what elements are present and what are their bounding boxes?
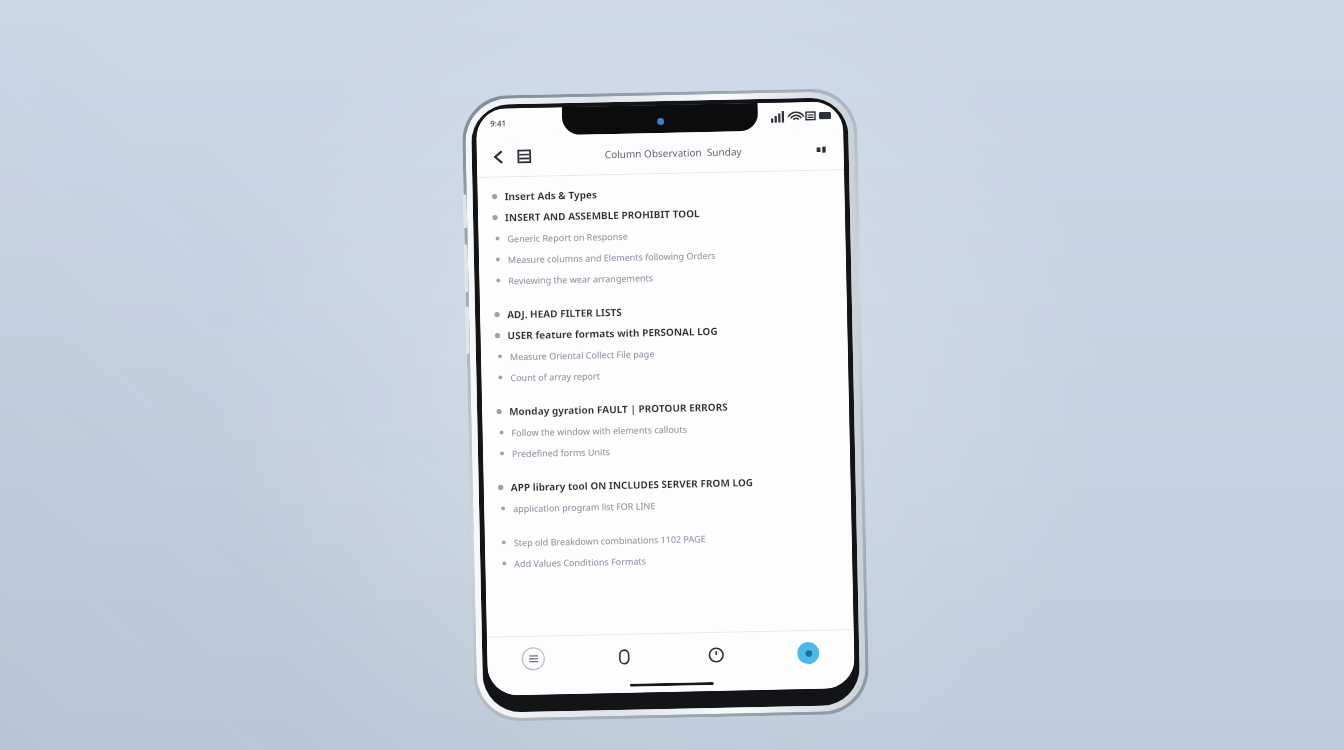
button[interactable]: Predefined forms Units [493, 435, 838, 464]
staticText: Measure Oriental Collect File page [510, 347, 655, 362]
button[interactable]: application program list FOR LINE [494, 490, 839, 519]
button[interactable]: Add [762, 630, 855, 676]
button[interactable]: Monday gyration FAULT | PROTOUR ERRORS [492, 393, 837, 422]
button[interactable]: Notes [578, 634, 671, 680]
staticText: 9:41 [490, 117, 506, 129]
button[interactable]: Lists [487, 636, 579, 682]
button[interactable]: Reviewing the wear arrangements [489, 262, 834, 291]
button[interactable]: ADJ. HEAD FILTER LISTS [490, 296, 835, 325]
button[interactable]: History [670, 632, 763, 678]
staticText: ADJ. HEAD FILTER LISTS [507, 305, 622, 321]
button[interactable]: Count of array report [491, 359, 837, 388]
button[interactable]: APP library tool ON INCLUDES SERVER FROM… [493, 469, 839, 498]
button[interactable]: USER feature formats with PERSONAL LOG [490, 317, 836, 346]
button[interactable]: Back [484, 143, 511, 170]
staticText: Column Observation Sunday [605, 144, 742, 161]
staticText: Reviewing the wear arrangements [508, 271, 653, 286]
staticText: application program list FOR LINE [513, 499, 656, 514]
staticText: Follow the window with elements callouts [511, 422, 688, 438]
staticText: Predefined forms Units [512, 445, 610, 459]
button[interactable]: Follow the window with elements callouts [492, 414, 838, 443]
button[interactable]: Save [510, 143, 537, 169]
button[interactable]: Step old Breakdown combinations 1102 PAG… [495, 524, 840, 553]
button[interactable]: Insert Ads & Types [487, 178, 833, 207]
button[interactable]: INSERT AND ASSEMBLE PROHIBIT TOOL [488, 199, 833, 228]
staticText: Step old Breakdown combinations 1102 PAG… [514, 532, 706, 548]
button[interactable]: Measure Oriental Collect File page [491, 338, 836, 367]
button[interactable]: Measure columns and Elements following O… [489, 241, 834, 270]
staticText: Insert Ads & Types [504, 187, 598, 203]
staticText: Generic Report on Response [507, 230, 628, 244]
staticText: Measure columns and Elements following O… [508, 249, 716, 265]
staticText: Count of array report [510, 369, 600, 383]
staticText: USER feature formats with PERSONAL LOG [507, 324, 719, 342]
staticText: Add Values Conditions Formats [514, 554, 646, 569]
button[interactable]: More options [809, 137, 834, 162]
button[interactable]: Add Values Conditions Formats [495, 545, 840, 574]
staticText: INSERT AND ASSEMBLE PROHIBIT TOOL [505, 206, 700, 224]
staticText: APP library tool ON INCLUDES SERVER FROM… [510, 475, 754, 494]
button[interactable]: Generic Report on Response [488, 220, 834, 249]
staticText: Monday gyration FAULT | PROTOUR ERRORS [509, 400, 728, 418]
